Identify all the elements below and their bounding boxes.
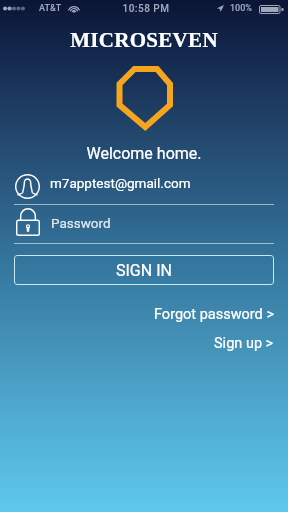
staticText: Sign up > [214,335,274,352]
staticText: Welcome home. [0,144,288,163]
other: Account [15,174,40,199]
button[interactable]: Account [0,171,288,203]
staticText: 10:58 PM [2,3,288,15]
staticText: m7apptest@gmail.com [50,175,191,191]
button[interactable]: SIGN IN [14,255,274,285]
staticText: MICROSEVEN [0,28,288,51]
other: Password [16,208,40,237]
staticText: SIGN IN [116,261,172,280]
button[interactable]: Sign up > [190,332,274,354]
staticText: 100% [230,3,252,14]
staticText: AT&T [39,3,62,14]
button[interactable]: Forgot password > [150,303,274,325]
staticText: Password [51,215,111,231]
button[interactable]: Password [0,206,288,240]
staticText: Forgot password > [154,306,274,323]
